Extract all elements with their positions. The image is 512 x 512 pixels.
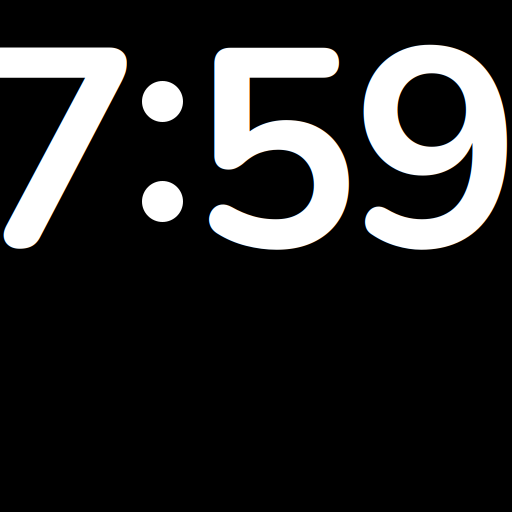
staticText: 7: [0, 0, 141, 347]
staticText: 9: [352, 0, 512, 347]
staticText: 5: [190, 0, 360, 347]
